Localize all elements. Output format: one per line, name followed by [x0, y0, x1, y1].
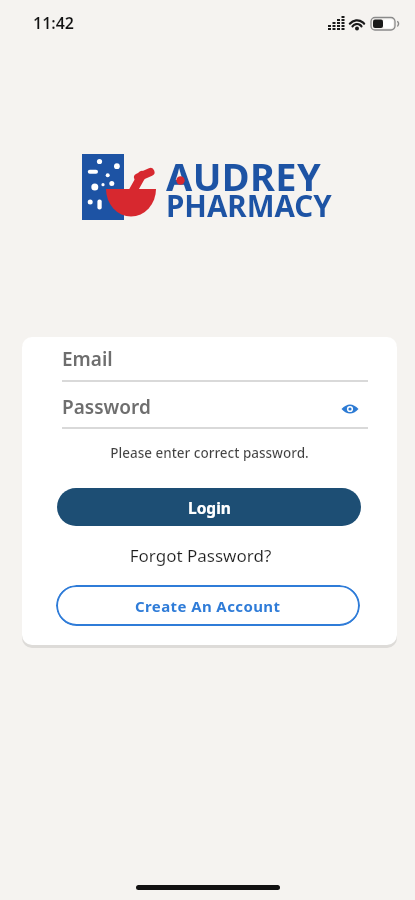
button[interactable]: Login — [57, 488, 361, 526]
button[interactable] — [341, 403, 359, 416]
staticText: 11:42 — [33, 12, 75, 34]
button[interactable]: Create An Account — [56, 585, 360, 626]
staticText: Login — [188, 497, 231, 518]
button[interactable] — [62, 343, 368, 380]
staticText: Create An Account — [135, 596, 281, 616]
staticText: Email — [62, 346, 113, 372]
staticText: Please enter correct password. — [22, 444, 397, 462]
button[interactable]: Forgot Password? — [22, 544, 388, 567]
staticText: AUDREY — [166, 150, 322, 202]
button[interactable] — [62, 391, 332, 427]
staticText: PHARMACY — [166, 185, 332, 225]
staticText: Forgot Password? — [22, 544, 388, 567]
staticText: Password — [62, 394, 151, 420]
